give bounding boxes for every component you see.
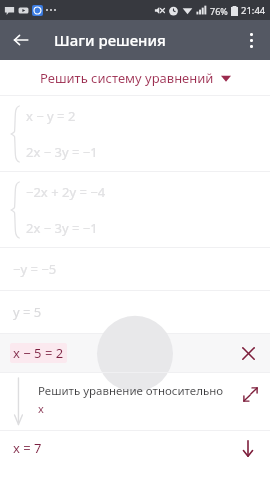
- staticText: x − 5 = 2: [13, 344, 64, 362]
- staticText: 76%: [210, 5, 228, 17]
- button[interactable]: Вниз: [234, 434, 262, 462]
- button[interactable]: x = 7: [0, 431, 270, 465]
- button[interactable]: Решить систему уравнений: [0, 60, 270, 95]
- button[interactable]: −2x + 2y = −4: [0, 172, 270, 247]
- button[interactable]: Решить уравнение относительно: [0, 373, 270, 430]
- button[interactable]: Меню: [236, 25, 266, 55]
- staticText: −2x + 2y = −4: [26, 183, 106, 201]
- staticText: x = 7: [13, 439, 42, 457]
- button[interactable]: x − y = 2: [0, 96, 270, 171]
- staticText: x: [38, 401, 44, 416]
- staticText: x − y = 2: [26, 107, 76, 125]
- staticText: Решить уравнение относительно: [38, 383, 224, 399]
- button[interactable]: Закрыть: [234, 339, 262, 367]
- staticText: 2x − 3y = −1: [26, 219, 98, 237]
- staticText: −y = −5: [13, 260, 57, 278]
- button[interactable]: y = 5: [0, 291, 270, 333]
- button[interactable]: Развернуть: [237, 381, 263, 407]
- staticText: 21:44: [241, 4, 266, 17]
- staticText: Решить систему уравнений: [40, 69, 214, 87]
- button[interactable]: x − 5 = 2: [0, 334, 270, 372]
- staticText: 2x − 3y = −1: [26, 143, 98, 161]
- staticText: Шаги решения: [54, 30, 166, 50]
- button[interactable]: Назад: [6, 25, 36, 55]
- staticText: y = 5: [13, 303, 42, 321]
